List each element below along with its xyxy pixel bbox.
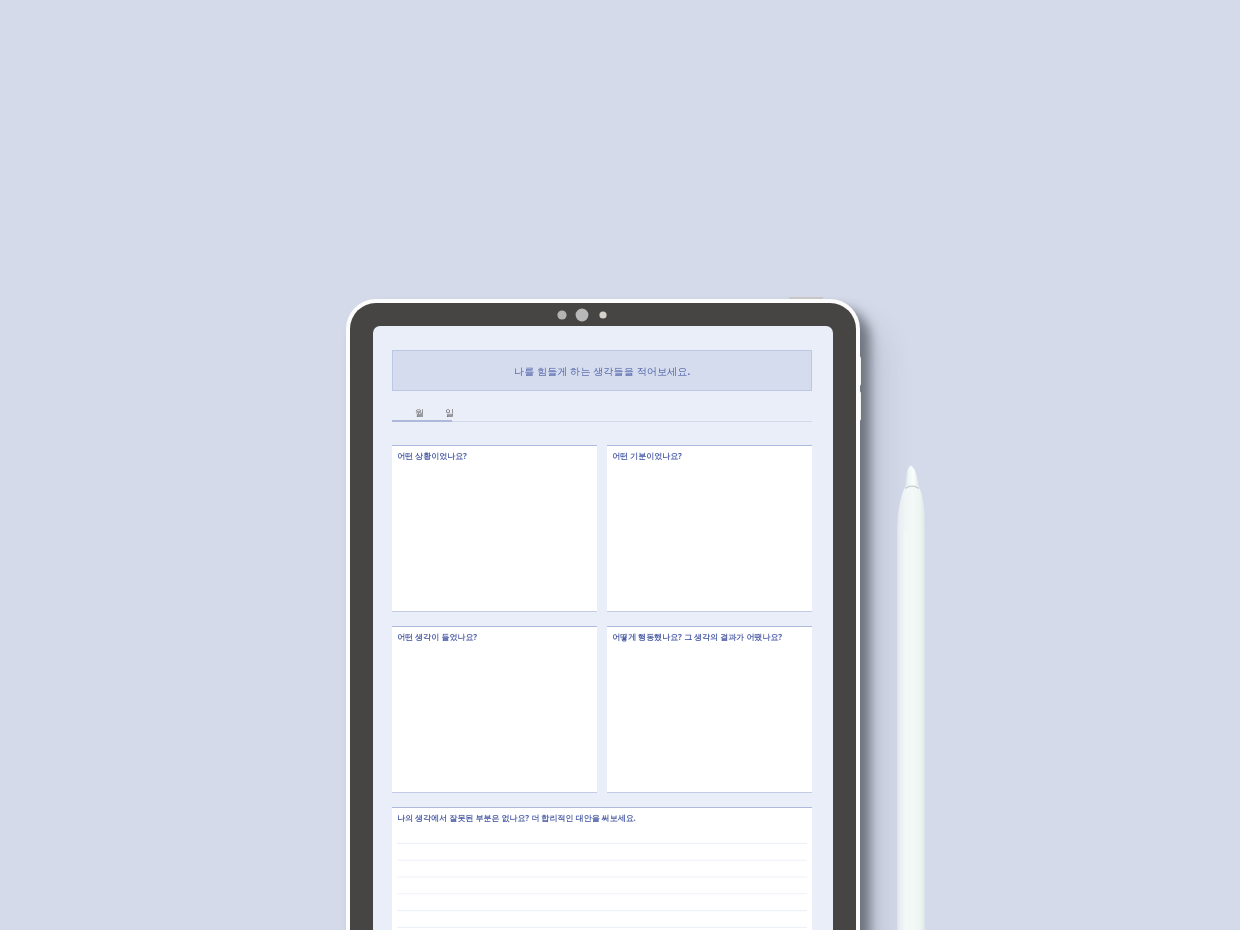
staticText: 월 (415, 407, 424, 418)
staticText: 어떤 상황이었나요? (397, 450, 467, 461)
staticText: 나를 힘들게 하는 생각들을 적어보세요. (514, 364, 691, 378)
button[interactable]: 나의 생각에서 잘못된 부분은 없나요? 더 합리적인 대안을 써보세요. (392, 807, 812, 930)
button[interactable]: 월 (392, 404, 446, 420)
staticText: 어떤 생각이 들었나요? (397, 631, 477, 642)
button[interactable]: 일 (436, 404, 463, 420)
other: Stylus pen (0, 0, 1240, 930)
staticText: 어떤 기분이었나요? (612, 450, 682, 461)
button[interactable]: 어떤 생각이 들었나요? (392, 626, 597, 793)
staticText: 나의 생각에서 잘못된 부분은 없나요? 더 합리적인 대안을 써보세요. (397, 812, 636, 823)
staticText: 일 (445, 407, 454, 418)
button[interactable]: 어떤 기분이었나요? (607, 445, 812, 612)
button[interactable]: Volume down (852, 391, 861, 421)
staticText: 어떻게 행동했나요? 그 생각의 결과가 어땠나요? (612, 631, 783, 642)
button[interactable]: 어떤 상황이었나요? (392, 445, 597, 612)
button[interactable]: 어떻게 행동했나요? 그 생각의 결과가 어땠나요? (607, 626, 812, 793)
button[interactable]: Volume up (852, 356, 861, 386)
button[interactable]: 나를 힘들게 하는 생각들을 적어보세요. (393, 351, 811, 390)
